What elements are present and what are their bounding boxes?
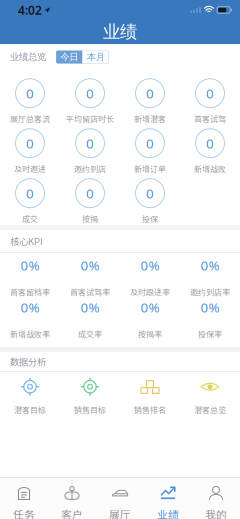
button[interactable]: 展厅	[96, 480, 144, 519]
staticText: 首客留档率	[10, 286, 50, 298]
staticText: 今日	[60, 51, 78, 63]
staticText: 业绩总览	[10, 51, 46, 63]
staticText: 首客试驾	[194, 113, 226, 124]
staticText: 成交率	[78, 328, 102, 340]
staticText: 按揭率	[138, 328, 162, 340]
staticText: 0	[206, 84, 214, 102]
staticText: 业绩	[103, 21, 137, 43]
staticText: 潜客目标	[14, 404, 46, 415]
staticText: 平均留店时长	[66, 113, 114, 124]
staticText: 0%	[140, 298, 159, 316]
staticText: 核心KPI	[10, 234, 43, 248]
button[interactable]: 0	[180, 81, 240, 122]
staticText: 投保率	[198, 328, 222, 340]
button[interactable]: 0%	[120, 305, 180, 333]
staticText: 新增战败率	[10, 328, 50, 340]
staticText: 0%	[20, 298, 39, 316]
button[interactable]: 0%	[60, 263, 120, 291]
button[interactable]: 任务	[0, 480, 48, 519]
staticText: 首客试驾率	[70, 286, 110, 298]
button[interactable]: 0	[0, 81, 60, 122]
staticText: 0	[146, 184, 154, 202]
button[interactable]: 0%	[120, 263, 180, 291]
staticText: 邀约到店率	[190, 286, 230, 298]
button[interactable]: 0	[120, 181, 180, 222]
staticText: 0%	[200, 298, 219, 316]
staticText: 销售排名	[134, 404, 166, 415]
staticText: 0	[146, 134, 154, 152]
staticText: 潜客总览	[194, 404, 226, 415]
button[interactable]: 潜客总览	[180, 377, 240, 415]
staticText: 成交	[22, 213, 38, 224]
staticText: 新增战败	[194, 163, 226, 174]
button[interactable]: 0	[0, 181, 60, 222]
staticText: 0%	[140, 256, 159, 274]
staticText: 业绩	[157, 506, 179, 519]
staticText: 0	[86, 84, 94, 102]
button[interactable]: 0%	[180, 305, 240, 333]
button[interactable]: 0%	[0, 305, 60, 333]
button[interactable]: 0%	[60, 305, 120, 333]
staticText: 0	[86, 184, 94, 202]
staticText: 按揭	[82, 213, 98, 224]
staticText: 销售目标	[74, 404, 106, 415]
button[interactable]: 0	[0, 131, 60, 172]
staticText: 及时跟进率	[130, 286, 170, 298]
staticText: 邀约到店	[74, 163, 106, 174]
staticText: 0%	[200, 256, 219, 274]
staticText: 投保	[142, 213, 158, 224]
staticText: 我的	[205, 506, 227, 519]
staticText: 0	[26, 184, 34, 202]
button[interactable]: 潜客目标	[0, 377, 60, 415]
staticText: 任务	[13, 506, 35, 519]
staticText: 客户	[61, 506, 83, 519]
button[interactable]: 0%	[180, 263, 240, 291]
staticText: 0	[26, 134, 34, 152]
staticText: 0%	[80, 256, 99, 274]
staticText: 数据分析	[10, 355, 46, 368]
button[interactable]: 业绩	[144, 480, 192, 519]
button[interactable]: 销售排名	[120, 377, 180, 415]
button[interactable]: 0	[180, 131, 240, 172]
button[interactable]: 0	[120, 81, 180, 122]
staticText: 展厅总客流	[10, 113, 50, 124]
staticText: 0	[26, 84, 34, 102]
button[interactable]: 销售目标	[60, 377, 120, 415]
staticText: 及时邀进	[14, 163, 46, 174]
button[interactable]: 今日	[56, 50, 82, 63]
button[interactable]: 0	[60, 131, 120, 172]
staticText: 4:02	[18, 2, 42, 18]
button[interactable]: 0	[60, 81, 120, 122]
button[interactable]: 我的	[192, 480, 240, 519]
staticText: 本月	[87, 51, 105, 63]
staticText: 0%	[20, 256, 39, 274]
staticText: 新增订单	[134, 163, 166, 174]
staticText: 新增潜客	[134, 113, 166, 124]
button[interactable]: 0%	[0, 263, 60, 291]
staticText: 0	[206, 134, 214, 152]
button[interactable]: 0	[120, 131, 180, 172]
staticText: 0%	[80, 298, 99, 316]
button[interactable]: 客户	[48, 480, 96, 519]
staticText: 展厅	[109, 506, 131, 519]
staticText: 0	[86, 134, 94, 152]
button[interactable]: 本月	[82, 50, 109, 63]
staticText: 0	[146, 84, 154, 102]
button[interactable]: 0	[60, 181, 120, 222]
